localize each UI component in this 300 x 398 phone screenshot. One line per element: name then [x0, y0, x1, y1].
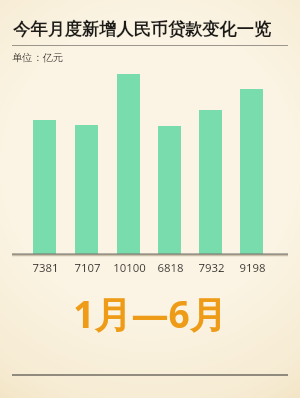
staticText: 单位：亿元 — [12, 51, 63, 64]
button[interactable]: 1月—6月 — [0, 288, 300, 336]
staticText: 1月—6月 — [73, 288, 227, 336]
staticText: 7381 — [32, 260, 59, 275]
button[interactable]: 今年月度新增人民币贷款变化一览 — [13, 18, 271, 40]
staticText: 7932 — [198, 260, 225, 275]
staticText: 9198 — [239, 260, 266, 275]
staticText: 6818 — [157, 260, 184, 275]
button[interactable]: 今年月度新增人民币贷款柱状图 — [0, 0, 300, 398]
staticText: 7107 — [74, 260, 101, 275]
staticText: 10100 — [113, 260, 146, 275]
